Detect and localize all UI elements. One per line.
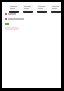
button[interactable] (37, 5, 47, 13)
button[interactable] (9, 5, 19, 13)
button[interactable] (5, 18, 24, 20)
button[interactable] (23, 5, 33, 13)
button[interactable] (5, 13, 16, 15)
button[interactable] (51, 5, 61, 13)
